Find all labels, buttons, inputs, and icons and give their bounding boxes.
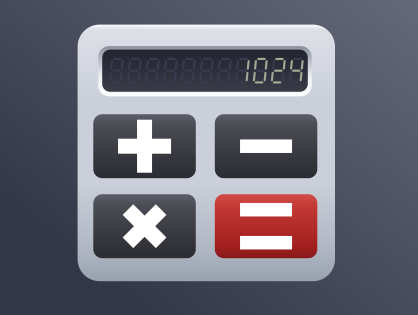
button[interactable]: Equals bbox=[215, 194, 317, 258]
button[interactable]: Subtract bbox=[215, 114, 317, 178]
button[interactable]: Add bbox=[93, 114, 196, 178]
button[interactable]: Multiply bbox=[93, 194, 196, 258]
